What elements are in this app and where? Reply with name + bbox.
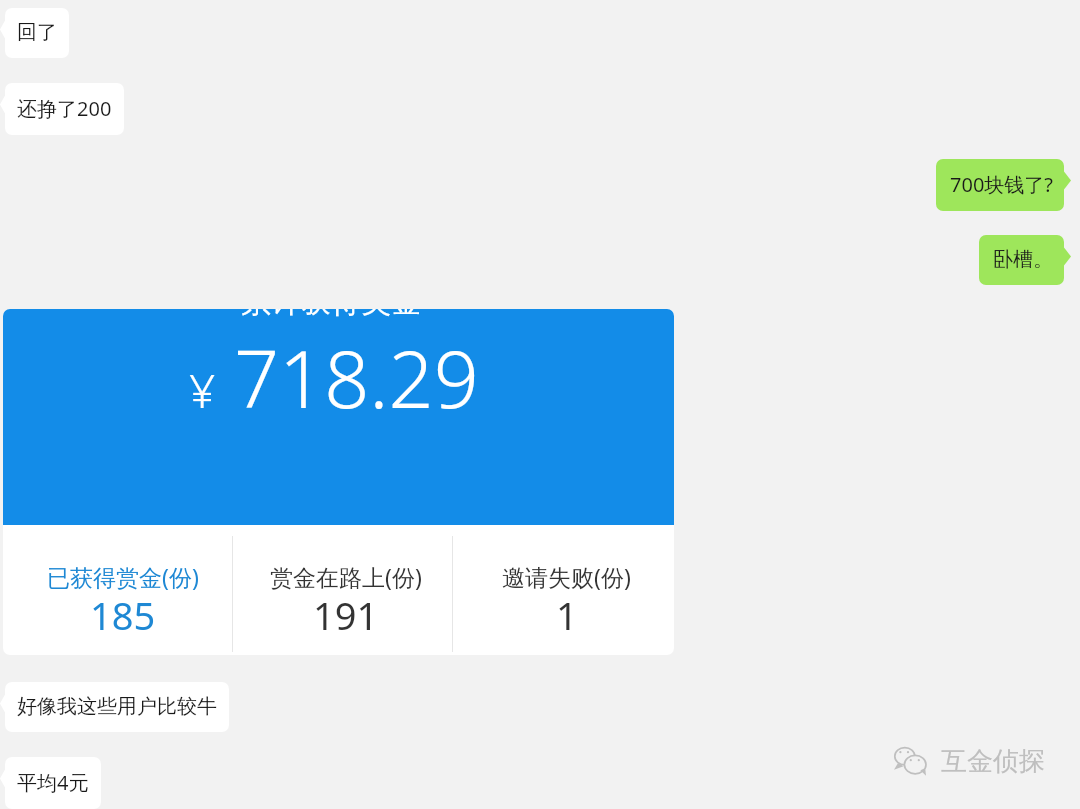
button[interactable]: 700块钱了?	[936, 159, 1064, 211]
staticText: 好像我这些用户比较牛	[17, 694, 217, 719]
staticText: 还挣了200	[17, 95, 112, 122]
button[interactable]: 卧槽。	[979, 235, 1064, 285]
button[interactable]: 累计获得奖金	[3, 309, 674, 655]
staticText: 700块钱了?	[950, 171, 1053, 198]
staticText: 191	[313, 589, 379, 641]
button[interactable]: 回了	[5, 8, 69, 58]
staticText: 1	[556, 589, 578, 641]
button[interactable]: 还挣了200	[5, 83, 124, 135]
staticText: 718.29	[234, 324, 479, 432]
staticText: 已获得赏金(份)	[47, 561, 199, 592]
button[interactable]: 赏金在路上(份)	[236, 525, 455, 655]
staticText: 回了	[17, 20, 57, 45]
staticText: 累计获得奖金	[241, 309, 421, 321]
button[interactable]: 平均4元	[5, 757, 101, 809]
button[interactable]: 邀请失败(份)	[456, 525, 674, 655]
staticText: 卧槽。	[993, 247, 1053, 272]
staticText: 赏金在路上(份)	[270, 561, 422, 592]
button[interactable]: 已获得赏金(份)	[8, 525, 237, 655]
button[interactable]: 好像我这些用户比较牛	[5, 682, 229, 732]
staticText: 平均4元	[17, 769, 89, 796]
staticText: 185	[90, 589, 156, 641]
staticText: 互金侦探	[941, 745, 1045, 778]
staticText: 邀请失败(份)	[502, 561, 631, 592]
staticText: ¥	[189, 359, 216, 422]
